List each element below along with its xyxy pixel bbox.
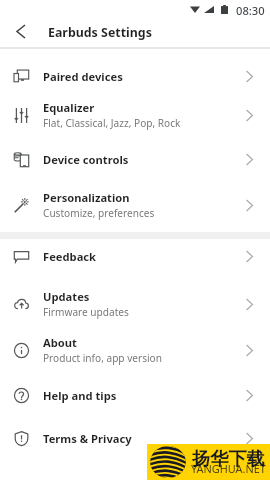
- staticText: Terms & Privacy: [43, 431, 132, 446]
- staticText: Product info, app version: [43, 351, 162, 365]
- staticText: YANGHUA.NET: [191, 461, 266, 476]
- button[interactable]: About: [0, 328, 270, 372]
- button[interactable]: Feedback: [0, 234, 270, 278]
- button[interactable]: Updates: [0, 282, 270, 326]
- button[interactable]: Personalization: [0, 183, 270, 227]
- staticText: Updates: [43, 289, 90, 304]
- staticText: Device controls: [43, 152, 129, 167]
- staticText: 扬华下载: [192, 447, 265, 470]
- staticText: Personalization: [43, 190, 130, 205]
- button[interactable]: Equalizer: [0, 93, 270, 137]
- staticText: Earbuds Settings: [48, 24, 152, 41]
- staticText: Flat, Classical, Jazz, Pop, Rock: [43, 116, 181, 130]
- button[interactable]: Terms & Privacy: [0, 416, 270, 460]
- staticText: Firmware updates: [43, 305, 129, 319]
- staticText: Paired devices: [43, 69, 123, 84]
- staticText: Help and tips: [43, 388, 117, 403]
- button[interactable]: Device controls: [0, 137, 270, 181]
- staticText: 08:30: [236, 3, 265, 15]
- staticText: Feedback: [43, 249, 97, 264]
- staticText: Equalizer: [43, 100, 95, 115]
- button[interactable]: Paired devices: [0, 54, 270, 98]
- button[interactable]: Back: [6, 17, 35, 46]
- button[interactable]: Help and tips: [0, 373, 270, 417]
- staticText: About: [43, 335, 77, 350]
- staticText: Customize, preferences: [43, 206, 155, 220]
